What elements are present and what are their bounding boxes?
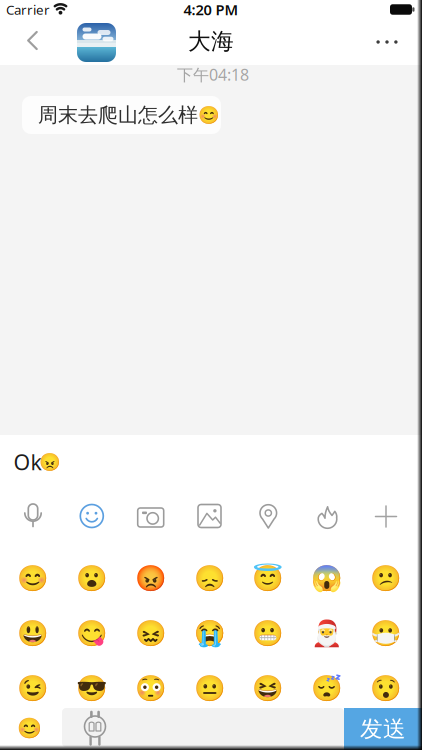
staticText: 😐 (193, 673, 225, 702)
button[interactable]: Recent emoji (16, 717, 41, 739)
button[interactable]: Emoji (311, 563, 343, 592)
button[interactable]: Emoji keyboard (77, 502, 107, 530)
staticText: 😊 (17, 563, 49, 592)
staticText: 😞 (193, 563, 225, 592)
button[interactable]: Emoji (76, 563, 108, 592)
staticText: 😬 (252, 618, 284, 647)
staticText: 大海 (188, 28, 234, 55)
button[interactable]: Emoji (135, 618, 167, 647)
staticText: 下午04:18 (177, 64, 249, 85)
staticText: 😷 (370, 618, 402, 647)
staticText: 😊 (197, 106, 219, 125)
staticText: 😋 (76, 618, 108, 647)
button[interactable]: Emoji (76, 618, 108, 647)
staticText: Ok (13, 448, 41, 476)
button[interactable]: Camera (136, 502, 166, 530)
staticText: 😮 (76, 563, 108, 592)
button[interactable]: Emoji (17, 618, 49, 647)
button[interactable]: Text input (62, 708, 344, 747)
button[interactable]: More (370, 28, 404, 56)
staticText: 😖 (135, 618, 167, 647)
staticText: 😠 (39, 453, 61, 472)
staticText: 😉 (17, 673, 49, 702)
button[interactable]: Emoji (370, 618, 402, 647)
staticText: 😱 (311, 563, 343, 592)
staticText: 😃 (17, 618, 49, 647)
button[interactable]: Location (253, 502, 283, 530)
button[interactable]: Emoji (135, 563, 167, 592)
staticText: 4:20 PM (183, 0, 238, 19)
button[interactable]: More options (371, 502, 401, 530)
button[interactable]: Emoji (311, 673, 343, 702)
button[interactable]: Hot topics (312, 502, 342, 530)
staticText: 😴 (311, 673, 343, 702)
button[interactable]: Emoji (252, 673, 284, 702)
staticText: 发送 (360, 715, 406, 743)
button[interactable]: Emoji (193, 673, 225, 702)
button[interactable]: Emoji (76, 673, 108, 702)
staticText: 😡 (135, 563, 167, 592)
button[interactable]: Emoji (193, 618, 225, 647)
staticText: 周末去爬山怎么样 (38, 103, 198, 127)
staticText: 😯 (370, 673, 402, 702)
button[interactable]: Emoji (370, 673, 402, 702)
button[interactable]: Emoji (252, 563, 284, 592)
staticText: 😎 (76, 673, 108, 702)
button[interactable]: Emoji (17, 563, 49, 592)
staticText: 😳 (135, 673, 167, 702)
button[interactable]: Back (18, 27, 46, 54)
button[interactable]: Emoji (17, 673, 49, 702)
button[interactable]: Emoji (370, 563, 402, 592)
staticText: 😭 (193, 618, 225, 647)
button[interactable]: Send (344, 708, 422, 750)
staticText: 😊 (16, 717, 41, 739)
staticText: Carrier (6, 1, 50, 18)
button[interactable]: Emoji (193, 563, 225, 592)
staticText: 😆 (252, 673, 284, 702)
button[interactable]: Profile photo (77, 23, 116, 62)
button[interactable]: Emoji (311, 618, 343, 647)
staticText: 😇 (252, 563, 284, 592)
button[interactable]: Photos (194, 502, 224, 530)
staticText: 😕 (370, 563, 402, 592)
button[interactable]: Message input (0, 435, 422, 497)
staticText: 🎅 (311, 618, 343, 647)
button[interactable]: Emoji (135, 673, 167, 702)
button[interactable]: Voice message (18, 502, 48, 530)
button[interactable]: Emoji (252, 618, 284, 647)
